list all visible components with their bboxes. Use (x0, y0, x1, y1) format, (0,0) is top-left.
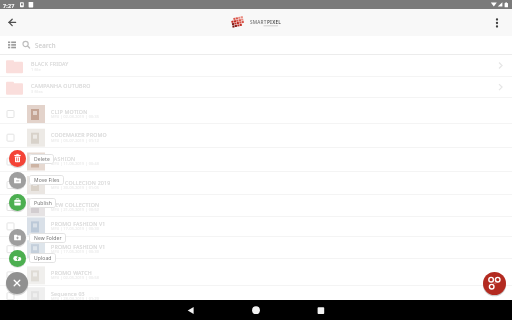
staticText: CODEMAKER PROMO (51, 131, 107, 138)
button[interactable] (9, 250, 26, 267)
staticText: Upload (34, 255, 52, 262)
staticText: NEW COLLECTION (51, 201, 100, 208)
button[interactable]: FASHION (0, 148, 512, 172)
staticText: BLACK FRIDAY (31, 60, 69, 67)
staticText: Delete (34, 156, 50, 163)
staticText: MP4 | 21-05-2019 | 00:52 (51, 207, 99, 212)
button[interactable]: CLIP MOTION (0, 98, 512, 124)
staticText: 1 file (31, 67, 41, 72)
button[interactable]: Delete (29, 154, 54, 164)
button[interactable] (6, 272, 28, 294)
staticText: MP4 | 02-08-2019 | 00:35 (51, 114, 99, 119)
staticText: Sequence 03 (51, 290, 85, 297)
button[interactable] (489, 12, 505, 33)
button[interactable] (2, 13, 22, 33)
staticText: MP4 | 28-04-2019 | 01:20 (51, 296, 99, 301)
button[interactable]: CAMPANHA OUTUBRO (0, 77, 512, 98)
staticText: CLIP MOTION (51, 108, 88, 115)
button[interactable]: BLACK FRIDAY (0, 54, 512, 77)
button[interactable]: Move Files (29, 175, 64, 185)
staticText: 7:27 (3, 2, 15, 9)
button[interactable] (174, 300, 206, 320)
staticText: PROMO WATCH (51, 269, 92, 276)
staticText: Search (35, 41, 56, 49)
button[interactable] (9, 194, 26, 211)
staticText: SMART (250, 19, 267, 25)
staticText: PROMO FASHION V1 (51, 220, 106, 227)
staticText: MP4 | 02-05-2019 | 00:58 (51, 275, 99, 280)
staticText: MP4 | 05-07-2019 | 01:12 (51, 138, 99, 143)
button[interactable] (240, 300, 272, 320)
staticText: FASHION (51, 155, 76, 162)
button[interactable]: Search (0, 36, 512, 54)
button[interactable]: NEW COLLECION 2019 (0, 171, 512, 195)
staticText: PIXEL (267, 19, 282, 25)
button[interactable] (9, 150, 26, 167)
staticText: MP4 | 30-05-2019 | 01:05 (51, 185, 99, 190)
staticText: PROMO FASHION V1 (51, 243, 106, 250)
button[interactable]: Upload (29, 253, 56, 263)
staticText: CAMPANHA OUTUBRO (31, 82, 91, 89)
button[interactable]: Publish (29, 198, 56, 208)
button[interactable]: New Folder (29, 233, 66, 243)
staticText: MP4 | 17-05-2019 | 00:30 (51, 226, 99, 231)
button[interactable]: Sequence 03 (0, 286, 512, 301)
staticText: 3 files (31, 89, 43, 94)
button[interactable] (483, 272, 506, 295)
button[interactable]: PROMO WATCH (0, 259, 512, 285)
staticText: Move Files (34, 177, 60, 184)
button[interactable]: NEW COLLECTION (0, 195, 512, 217)
button[interactable]: PROMO FASHION V1 (0, 217, 512, 236)
button[interactable]: CODEMAKER PROMO (0, 124, 512, 148)
button[interactable] (9, 229, 26, 246)
button[interactable]: PROMO FASHION V1 (0, 236, 512, 259)
staticText: Publish (34, 200, 52, 207)
staticText: MP4 | 17-05-2019 | 00:30 (51, 249, 99, 254)
staticText: MP4 | 11-06-2019 | 00:48 (51, 161, 99, 166)
button[interactable] (9, 172, 26, 189)
button[interactable] (305, 300, 337, 320)
staticText: New Folder (34, 235, 62, 242)
staticText: NEW COLLECION 2019 (51, 179, 111, 186)
